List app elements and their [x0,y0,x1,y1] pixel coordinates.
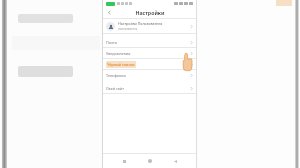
staticText: Уведомления [106,51,131,56]
staticText: Настройки Пользователя [118,21,163,26]
staticText: Почта [106,40,117,45]
button[interactable]: Back [170,156,180,166]
button[interactable]: Настройки Пользователя [103,19,196,33]
staticText: пользователь [118,27,138,31]
button[interactable]: Back [105,8,114,17]
button[interactable]: Уведомления [103,48,196,58]
staticText: Окей сайт [106,86,124,91]
staticText: Настройки [135,9,165,16]
button[interactable]: Телефония [103,70,196,80]
button[interactable]: Окей сайт [103,83,196,93]
button[interactable]: Recents [119,156,129,166]
button[interactable]: Home [145,156,155,166]
button[interactable]: Почта [103,37,196,47]
staticText: Телефония [106,73,126,78]
button[interactable]: Чёрный список [103,59,196,69]
staticText: Чёрный список [107,62,135,67]
